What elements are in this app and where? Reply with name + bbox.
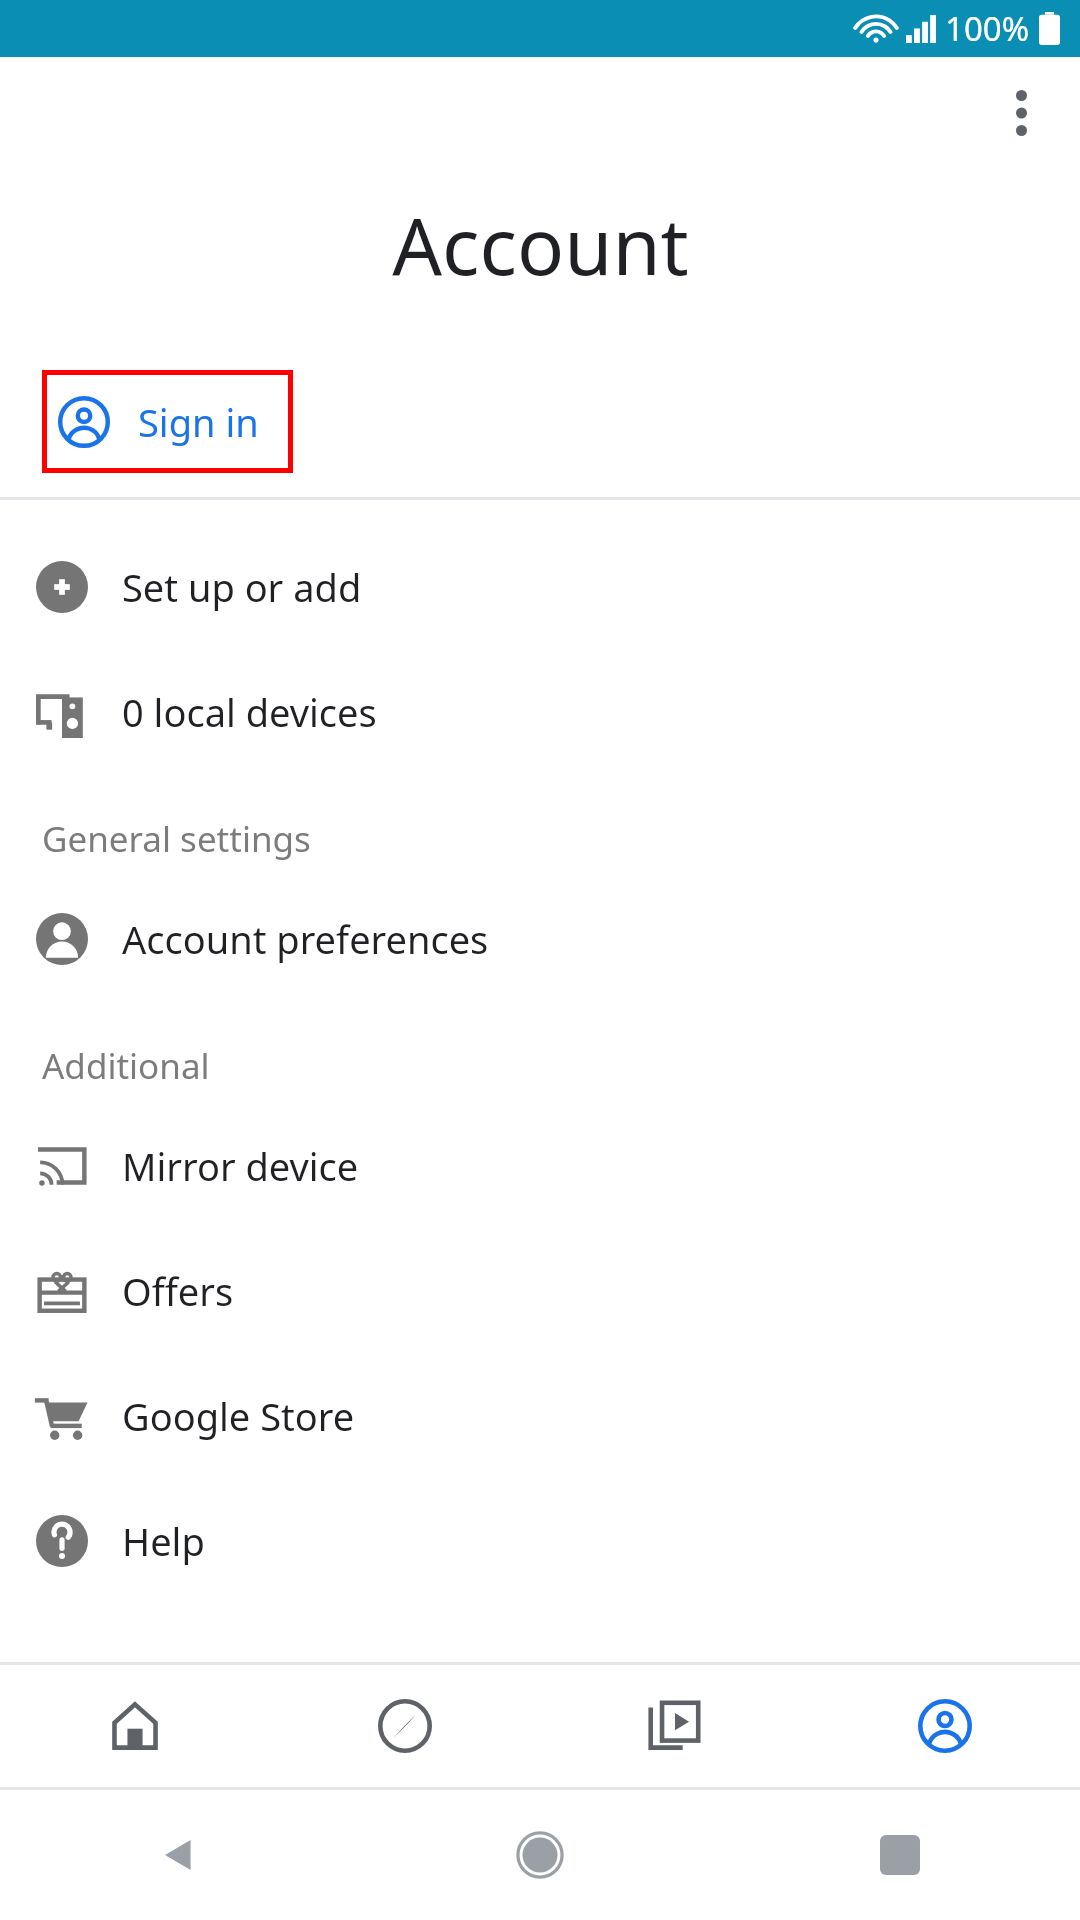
staticText: Help bbox=[122, 1515, 205, 1567]
staticText: Offers bbox=[122, 1265, 234, 1317]
button[interactable]: Back bbox=[0, 1790, 360, 1920]
button[interactable]: Recent apps bbox=[720, 1790, 1080, 1920]
staticText: Sign in bbox=[138, 396, 259, 448]
button[interactable]: Account preferences bbox=[0, 876, 1080, 1001]
button[interactable]: More options bbox=[978, 70, 1064, 156]
staticText: General settings bbox=[42, 815, 311, 863]
staticText: Google Store bbox=[122, 1390, 355, 1442]
button[interactable]: 0 local devices bbox=[0, 649, 1080, 774]
button[interactable]: Home bbox=[0, 1665, 270, 1787]
button[interactable]: Explore bbox=[270, 1665, 540, 1787]
button[interactable]: Set up or add bbox=[0, 524, 1080, 649]
button[interactable]: Sign in bbox=[42, 370, 293, 473]
staticText: Additional bbox=[42, 1042, 210, 1090]
button[interactable]: Home bbox=[360, 1790, 720, 1920]
staticText: Account bbox=[392, 192, 689, 298]
staticText: Account preferences bbox=[122, 913, 489, 965]
button[interactable]: Mirror device bbox=[0, 1103, 1080, 1228]
staticText: Mirror device bbox=[122, 1140, 359, 1192]
button[interactable]: Offers bbox=[0, 1228, 1080, 1353]
button[interactable]: Account bbox=[810, 1665, 1080, 1787]
staticText: Set up or add bbox=[122, 561, 362, 613]
button[interactable]: Library bbox=[540, 1665, 810, 1787]
staticText: 100% bbox=[945, 6, 1030, 51]
button[interactable]: Help bbox=[0, 1478, 1080, 1603]
button[interactable]: Google Store bbox=[0, 1353, 1080, 1478]
staticText: 0 local devices bbox=[122, 686, 377, 738]
